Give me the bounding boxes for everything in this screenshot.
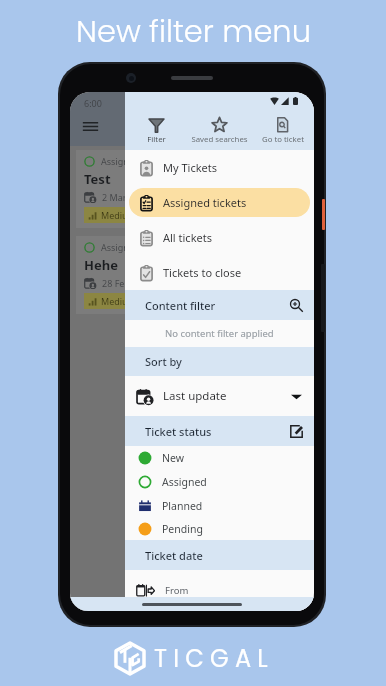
staticText: Medium [101, 295, 137, 307]
staticText: Planned [162, 499, 203, 513]
staticText: 28 Feb [102, 277, 130, 289]
staticText: Ticket status [145, 424, 212, 439]
button[interactable]: New [125, 446, 314, 470]
staticText: Sort by [145, 354, 182, 369]
staticText: New filter menu [76, 10, 311, 53]
staticText: Hehe [84, 256, 118, 274]
staticText: Saved searches [191, 134, 248, 145]
staticText: Assigned [162, 475, 207, 489]
button[interactable]: My Tickets [129, 153, 310, 182]
staticText: Pending [162, 522, 203, 536]
button[interactable]: Saved searches [188, 116, 251, 145]
button[interactable]: Pending [125, 518, 314, 540]
staticText: 2 Mar [102, 191, 127, 203]
button[interactable]: Assigned tickets [129, 188, 310, 217]
button[interactable]: From [125, 570, 314, 610]
staticText: Tickets to close [163, 265, 242, 280]
staticText: No content filter applied [165, 327, 274, 340]
button[interactable]: Edit ticket status [286, 421, 306, 441]
staticText: Assigned [101, 155, 140, 167]
staticText: Assigned tickets [163, 195, 247, 210]
button[interactable]: Assigned [125, 470, 314, 494]
button[interactable]: Filter [125, 116, 188, 145]
staticText: Assigned [101, 241, 140, 253]
staticText: Content filter [145, 298, 216, 313]
staticText: TICGAL [154, 642, 274, 676]
staticText: Filter [147, 134, 166, 145]
staticText: New [162, 451, 184, 465]
staticText: Go to ticket [262, 134, 304, 145]
staticText: From [165, 584, 189, 597]
button[interactable]: Tickets to close [129, 258, 310, 287]
button[interactable]: Planned [125, 494, 314, 518]
button[interactable]: Go to ticket [251, 116, 314, 145]
button[interactable]: Last update [125, 376, 314, 416]
button[interactable]: Search content filter [286, 295, 306, 315]
staticText: Medium [101, 209, 137, 221]
staticText: My Tickets [163, 160, 217, 175]
staticText: Test [84, 170, 111, 188]
staticText: Ticket date [145, 548, 203, 563]
button[interactable]: All tickets [129, 223, 310, 252]
staticText: 6:00 [84, 97, 102, 109]
staticText: Last update [163, 388, 227, 404]
staticText: All tickets [163, 230, 212, 245]
